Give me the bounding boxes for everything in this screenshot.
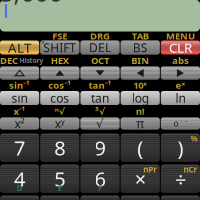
staticText: MENU bbox=[166, 30, 195, 42]
staticText: HEX bbox=[51, 54, 69, 67]
button[interactable]: 1 bbox=[0, 195, 39, 200]
button[interactable]: 2 bbox=[40, 195, 79, 200]
button[interactable]: arrow bbox=[0, 66, 39, 79]
button[interactable]: ln bbox=[161, 91, 200, 105]
button[interactable]: DEL bbox=[80, 40, 120, 54]
staticText: o ′ ″ bbox=[173, 118, 187, 129]
button[interactable]: o ′ ″ bbox=[161, 117, 200, 129]
staticText: BS bbox=[133, 39, 148, 55]
staticText: E bbox=[58, 183, 62, 193]
staticText: -3,000 bbox=[0, 0, 62, 9]
button[interactable]: √ bbox=[80, 117, 120, 129]
staticText: ALT bbox=[8, 39, 31, 56]
staticText: log bbox=[132, 90, 149, 106]
button[interactable]: × bbox=[121, 164, 160, 193]
staticText: DEC bbox=[0, 54, 18, 67]
staticText: + bbox=[135, 196, 146, 200]
staticText: ln bbox=[175, 90, 185, 106]
staticText: 10ˣ bbox=[133, 79, 147, 91]
staticText: TAB bbox=[132, 30, 149, 42]
staticText: BIN bbox=[131, 54, 149, 67]
staticText: % bbox=[190, 133, 197, 144]
button[interactable]: sin bbox=[0, 91, 39, 105]
staticText: eˣ bbox=[175, 79, 185, 91]
button[interactable]: SHIFT bbox=[40, 40, 79, 54]
button[interactable]: π bbox=[121, 117, 160, 129]
staticText: 8 bbox=[54, 134, 65, 161]
staticText: sin bbox=[12, 90, 28, 106]
button[interactable]: arrow bbox=[80, 66, 120, 79]
staticText: x⁻¹ bbox=[14, 105, 26, 117]
button[interactable]: BS bbox=[121, 40, 160, 54]
button[interactable]: 9 bbox=[80, 133, 120, 162]
staticText: OCT bbox=[91, 54, 109, 67]
staticText: 3 bbox=[94, 196, 105, 200]
staticText: History bbox=[19, 56, 43, 65]
staticText: cos⁻¹ bbox=[48, 79, 71, 91]
staticText: 7 bbox=[14, 134, 25, 161]
staticText: ( bbox=[137, 134, 143, 161]
staticText: n! bbox=[136, 105, 145, 117]
button[interactable]: 4 bbox=[0, 164, 39, 193]
button[interactable]: 6 bbox=[80, 164, 120, 193]
staticText: 4 bbox=[14, 165, 25, 192]
staticText: D bbox=[17, 183, 23, 193]
staticText: 9 bbox=[94, 134, 105, 161]
staticText: ) bbox=[177, 134, 183, 161]
staticText: 2 bbox=[54, 196, 65, 200]
staticText: F bbox=[98, 183, 102, 193]
button[interactable]: arrow bbox=[121, 66, 160, 79]
staticText: − bbox=[175, 196, 186, 200]
staticText: DEL bbox=[89, 39, 111, 55]
staticText: tan bbox=[91, 90, 109, 106]
button[interactable]: ( bbox=[121, 133, 160, 162]
staticText: tan⁻¹ bbox=[88, 79, 111, 91]
button[interactable]: + bbox=[121, 195, 160, 200]
button[interactable]: 7 bbox=[0, 133, 39, 162]
staticText: ÷ bbox=[175, 165, 186, 192]
button[interactable]: 5 bbox=[40, 164, 79, 193]
button[interactable]: ) bbox=[161, 133, 200, 162]
staticText: 1 bbox=[14, 196, 25, 200]
staticText: cos bbox=[50, 90, 69, 106]
button[interactable]: cos bbox=[40, 91, 79, 105]
button[interactable]: ALT bbox=[0, 40, 39, 54]
staticText: sin⁻¹ bbox=[9, 79, 30, 91]
staticText: nPr bbox=[143, 164, 157, 175]
staticText: DRG bbox=[90, 30, 110, 42]
button[interactable]: arrow bbox=[161, 66, 200, 79]
staticText: π bbox=[136, 115, 144, 131]
button[interactable]: log bbox=[121, 91, 160, 105]
staticText: 6 bbox=[94, 165, 105, 192]
button[interactable]: ÷ bbox=[161, 164, 200, 193]
staticText: FSE bbox=[52, 30, 67, 42]
staticText: × bbox=[135, 165, 146, 192]
staticText: ³√ bbox=[95, 105, 105, 117]
staticText: nCr bbox=[183, 164, 197, 175]
button[interactable]: xʸ bbox=[40, 117, 79, 129]
staticText: xʸ bbox=[55, 115, 65, 131]
button[interactable]: 3 bbox=[80, 195, 120, 200]
button[interactable]: − bbox=[161, 195, 200, 200]
button[interactable]: CLR bbox=[161, 40, 200, 54]
button[interactable]: x² bbox=[0, 117, 39, 129]
staticText: x² bbox=[15, 115, 25, 131]
button[interactable]: arrow bbox=[40, 66, 79, 79]
staticText: ⁿ√ bbox=[55, 105, 65, 117]
staticText: √ bbox=[96, 117, 104, 130]
staticText: abs bbox=[172, 54, 189, 67]
staticText: SHIFT bbox=[43, 39, 76, 55]
staticText: CLR bbox=[169, 39, 192, 56]
staticText: 5 bbox=[54, 165, 65, 192]
button[interactable]: tan bbox=[80, 91, 120, 105]
button[interactable]: 8 bbox=[40, 133, 79, 162]
